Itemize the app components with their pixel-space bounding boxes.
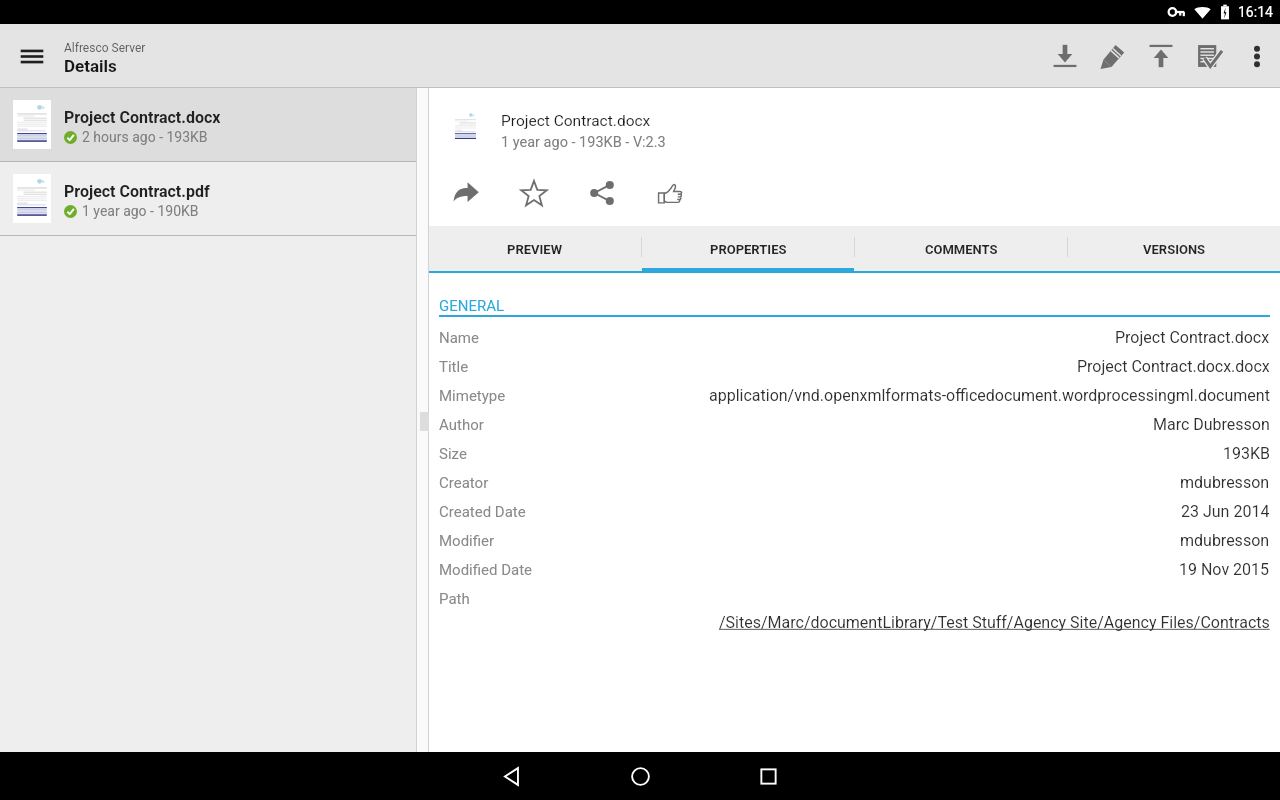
staticText: COMMENTS [925,242,998,257]
button[interactable]: Forward [442,169,490,217]
staticText: 1 year ago - 190KB [82,203,199,219]
staticText: Project Contract.docx.docx [1077,357,1270,376]
button[interactable]: Upload [1137,24,1185,88]
staticText: Details [64,56,117,76]
button[interactable]: PREVIEW [429,226,641,273]
staticText: Project Contract.pdf [64,182,210,201]
staticText: application/vnd.openxmlformats-officedoc… [709,386,1270,405]
button[interactable]: PROPERTIES [642,226,854,273]
staticText: Modifier [439,532,495,550]
staticText: Path [439,590,470,608]
staticText: 16:14 [1238,4,1273,20]
staticText: Project Contract.docx [64,108,221,127]
button[interactable]: Download [1041,24,1089,88]
staticText: Creator [439,474,489,492]
staticText: Author [439,416,484,434]
button[interactable]: Review [1185,24,1233,88]
staticText: /Sites/Marc/documentLibrary/Test Stuff/A… [719,613,1270,631]
staticText: 2 hours ago - 193KB [82,129,208,145]
button[interactable]: Project Contract.pdf [0,162,416,235]
button[interactable]: Favorite [510,169,558,217]
button[interactable]: Like [646,169,694,217]
button[interactable]: Share [578,169,626,217]
staticText: Modified Date [439,561,533,579]
staticText: Title [439,358,469,376]
staticText: mdubresson [1180,531,1270,550]
staticText: Name [439,329,479,347]
button[interactable]: Recent apps [732,752,804,800]
staticText: Mimetype [439,387,506,405]
button[interactable]: Home [604,752,676,800]
button[interactable]: /Sites/Marc/documentLibrary/Test Stuff/A… [439,613,1270,631]
staticText: Project Contract.docx [1115,328,1270,347]
staticText: Size [439,445,467,463]
button[interactable]: Project Contract.docx [0,88,416,161]
staticText: 23 Jun 2014 [1181,502,1270,521]
staticText: Alfresco Server [64,41,146,55]
staticText: PROPERTIES [710,242,787,257]
staticText: 193KB [1223,444,1270,463]
button[interactable]: Open navigation drawer [0,24,64,88]
button[interactable]: Edit [1089,24,1137,88]
staticText: PREVIEW [507,242,563,257]
staticText: 19 Nov 2015 [1179,560,1270,579]
button[interactable]: More options [1233,24,1280,88]
button[interactable]: COMMENTS [855,226,1067,273]
button[interactable]: Back [476,752,548,800]
staticText: GENERAL [439,297,505,315]
staticText: VERSIONS [1143,242,1206,257]
staticText: mdubresson [1180,473,1270,492]
button[interactable]: VERSIONS [1068,226,1280,273]
staticText: Marc Dubresson [1153,415,1270,434]
staticText: Created Date [439,503,526,521]
staticText: 1 year ago - 193KB - V:2.3 [501,134,666,151]
staticText: Project Contract.docx [501,112,651,130]
